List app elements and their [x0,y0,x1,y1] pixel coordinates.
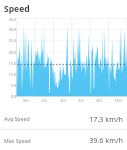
staticText: 0.0 [2,94,16,99]
button[interactable]: 35.0 [0,17,127,105]
staticText: 15.0 [2,61,16,66]
staticText: 39.6 km/h [32,135,123,145]
staticText: 10.0 [2,72,16,77]
staticText: 8.0 [92,98,106,103]
staticText: 25.0 [2,38,16,43]
staticText: Speed [4,3,30,15]
staticText: 2.0 [37,98,51,103]
staticText: 4.0 [56,98,70,103]
staticText: 0m [19,98,33,103]
staticText: 20.0 [2,50,16,55]
staticText: 10.0 [111,98,125,103]
staticText: 5.0 [2,83,16,88]
staticText: Avg Speed [4,115,30,122]
button[interactable]: Avg Speed [0,108,127,129]
staticText: 17.3 km/h [31,114,123,124]
staticText: 35.0 [2,17,16,22]
staticText: 6.0 [74,98,88,103]
button[interactable]: Max Speed [0,130,127,150]
staticText: Max Speed [4,137,31,144]
staticText: 30.0 [2,27,16,32]
